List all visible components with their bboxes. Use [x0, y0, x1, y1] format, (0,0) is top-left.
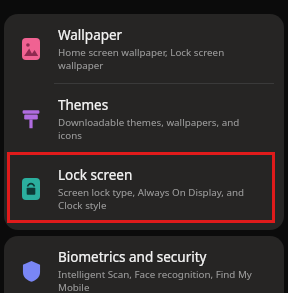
staticText: Wallpaper [58, 26, 123, 44]
staticText: Biometrics and security [58, 248, 207, 266]
staticText: Screen lock type, Always On Display, and… [58, 186, 245, 212]
staticText: Lock screen [58, 166, 133, 184]
other: Biometrics and security [22, 260, 41, 282]
staticText: Intelligent Scan, Face recognition, Find… [58, 268, 252, 293]
button[interactable]: Lock screen [4, 154, 284, 223]
staticText: Home screen wallpaper, Lock screen wallp… [58, 46, 225, 72]
other: Lock screen [22, 178, 40, 200]
button[interactable]: Themes [4, 84, 284, 153]
other: Wallpaper [22, 38, 40, 60]
button[interactable]: Biometrics and security [4, 236, 284, 293]
other: Themes [21, 108, 41, 130]
button[interactable]: Wallpaper [4, 14, 284, 83]
staticText: Downloadable themes, wallpapers, and ico… [58, 116, 240, 142]
staticText: Themes [58, 96, 109, 114]
